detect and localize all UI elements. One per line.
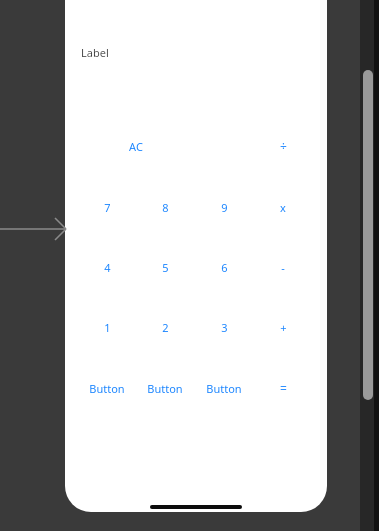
button[interactable]: 2 — [142, 312, 188, 342]
button[interactable]: = — [260, 373, 306, 403]
staticText: ÷ — [280, 138, 287, 154]
button[interactable]: 5 — [142, 252, 188, 282]
button[interactable]: 6 — [201, 252, 247, 282]
button[interactable]: AC — [113, 131, 159, 161]
staticText: 9 — [221, 200, 228, 215]
button[interactable]: ÷ — [260, 131, 306, 161]
button[interactable]: x — [260, 192, 306, 222]
other: Pointer — [0, 214, 66, 244]
button[interactable]: Button — [84, 373, 130, 403]
button[interactable]: 1 — [84, 312, 130, 342]
button[interactable]: - — [260, 252, 306, 282]
button[interactable]: 4 — [84, 252, 130, 282]
staticText: Label — [81, 45, 109, 60]
staticText: Button — [206, 381, 242, 396]
staticText: AC — [129, 139, 143, 154]
button[interactable]: Button — [142, 373, 188, 403]
staticText: + — [280, 320, 287, 335]
staticText: 6 — [221, 260, 228, 275]
button[interactable]: Scroll — [363, 70, 373, 400]
staticText: Button — [147, 381, 183, 396]
button[interactable]: Button — [201, 373, 247, 403]
button[interactable]: 8 — [142, 192, 188, 222]
staticText: 3 — [221, 320, 228, 335]
staticText: 4 — [104, 260, 111, 275]
staticText: 1 — [104, 320, 111, 335]
staticText: 5 — [162, 260, 169, 275]
staticText: 7 — [104, 200, 111, 215]
button[interactable]: 9 — [201, 192, 247, 222]
staticText: - — [281, 260, 285, 275]
staticText: 2 — [162, 320, 169, 335]
staticText: 8 — [162, 200, 169, 215]
staticText: x — [280, 200, 286, 215]
button[interactable]: + — [260, 312, 306, 342]
button[interactable]: 3 — [201, 312, 247, 342]
staticText: Button — [89, 381, 125, 396]
staticText: = — [280, 380, 287, 396]
button[interactable]: 7 — [84, 192, 130, 222]
